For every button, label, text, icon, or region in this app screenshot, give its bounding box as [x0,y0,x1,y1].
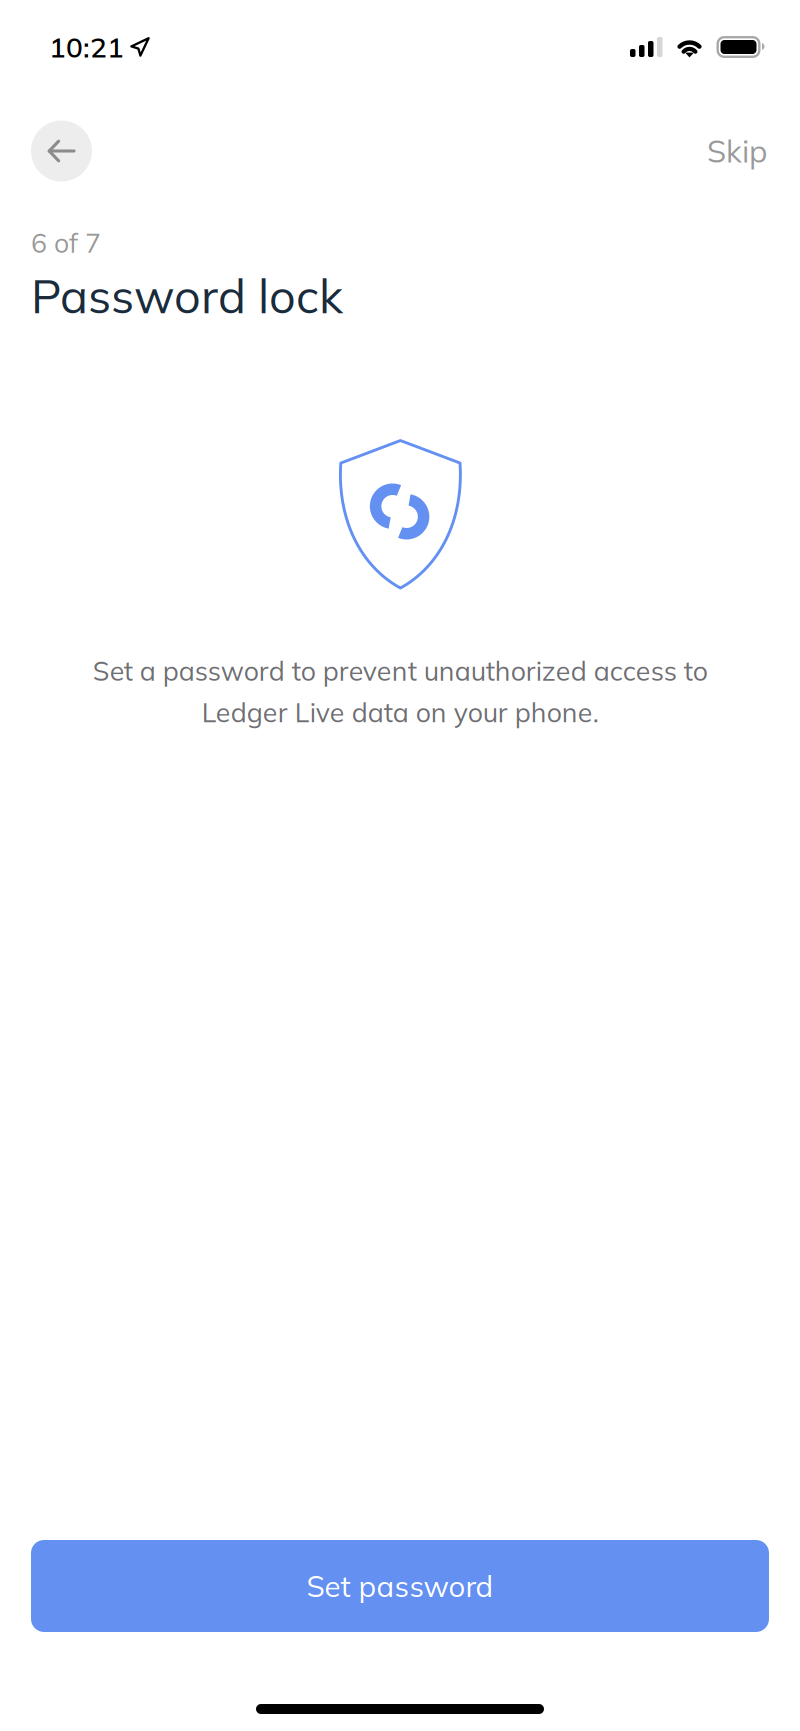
staticText: Set a password to prevent unauthorized a… [92,654,707,729]
button[interactable]: Set password [31,1540,769,1632]
staticText: Skip [707,132,767,170]
staticText: Set password [306,1568,493,1604]
staticText: 6 of 7 [31,226,101,259]
staticText: 10:21 [49,29,124,64]
button[interactable]: Back [31,120,92,181]
button[interactable]: Skip [683,124,767,178]
staticText: Password lock [31,266,343,325]
